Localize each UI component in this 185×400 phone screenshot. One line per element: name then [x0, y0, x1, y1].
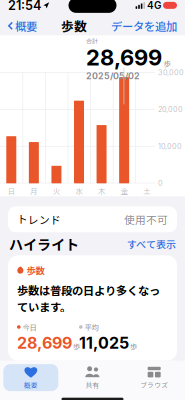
button[interactable]: データを追加 — [107, 16, 181, 35]
staticText: 水 — [75, 185, 82, 196]
staticText: 20,000 — [158, 105, 183, 114]
staticText: すべて表示 — [127, 237, 176, 251]
button[interactable]: トレンド — [8, 206, 177, 232]
button[interactable]: 概要 — [3, 364, 58, 391]
staticText: トレンド — [17, 212, 61, 227]
staticText: 概要 — [15, 18, 37, 34]
staticText: 歩 — [163, 58, 170, 69]
staticText: 金 — [121, 185, 128, 196]
staticText: 28,699 — [86, 44, 162, 71]
staticText: 11,025 — [79, 333, 129, 353]
staticText: 歩数 — [61, 17, 87, 35]
staticText: ブラウズ — [140, 380, 168, 390]
staticText: 使用不可 — [124, 212, 168, 227]
staticText: 21:54 — [8, 0, 41, 13]
staticText: 合計 — [86, 36, 98, 45]
staticText: 28,699 — [17, 333, 72, 353]
staticText: ハイライト — [9, 234, 79, 254]
staticText: 日 — [8, 185, 15, 196]
staticText: 月 — [30, 185, 37, 196]
staticText: 歩 — [73, 341, 80, 352]
staticText: 30,000 — [158, 68, 184, 77]
button[interactable]: 歩数 — [8, 255, 177, 361]
staticText: 10,000 — [158, 142, 182, 151]
staticText: 今日 — [23, 322, 37, 332]
staticText: 概要 — [24, 380, 38, 390]
staticText: 平均 — [85, 322, 99, 332]
staticText: 歩数は普段の日より多くなっています。 — [17, 282, 160, 315]
staticText: 木 — [98, 185, 105, 196]
staticText: 0 — [158, 179, 163, 187]
staticText: 火 — [53, 185, 60, 196]
button[interactable]: すべて表示 — [127, 237, 176, 251]
staticText: 4G — [147, 0, 161, 11]
staticText: 土 — [143, 185, 150, 196]
staticText: 2025/05/02 — [86, 71, 140, 81]
button[interactable]: ブラウズ — [127, 364, 182, 391]
button[interactable]: 概要 — [4, 16, 41, 35]
button[interactable]: 共有 — [65, 364, 120, 391]
staticText: 歩 — [130, 341, 137, 352]
staticText: データを追加 — [111, 18, 177, 34]
staticText: 歩数 — [26, 263, 44, 277]
staticText: 共有 — [85, 380, 99, 390]
